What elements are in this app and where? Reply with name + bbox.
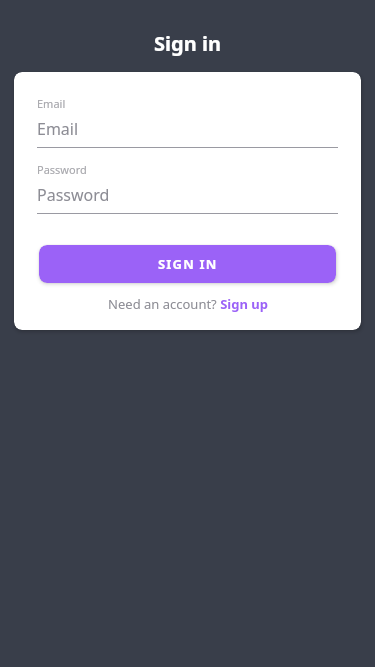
staticText: Password <box>37 184 110 206</box>
staticText: SIGN IN <box>158 255 218 273</box>
staticText: Password <box>37 162 87 177</box>
staticText: Sign in <box>154 30 221 57</box>
staticText: Email <box>37 96 66 111</box>
button[interactable]: Need an account? Sign up <box>37 295 338 313</box>
staticText: Email <box>37 118 79 140</box>
staticText: Need an account? Sign up <box>108 295 268 313</box>
button[interactable]: Password <box>37 184 338 206</box>
button[interactable]: Email <box>37 118 338 140</box>
button[interactable]: SIGN IN <box>39 245 336 283</box>
